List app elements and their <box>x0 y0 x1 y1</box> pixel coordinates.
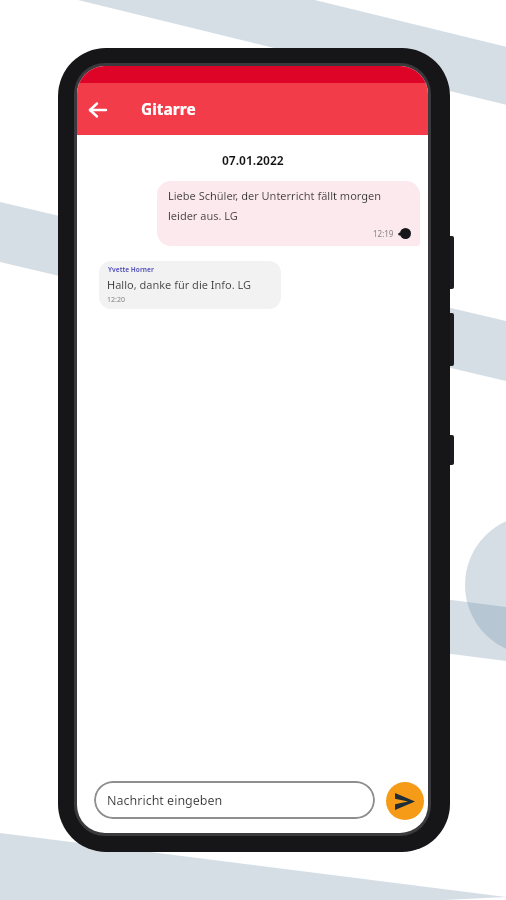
staticText: Yvette Horner <box>108 265 154 274</box>
staticText: 07.01.2022 <box>222 152 284 168</box>
staticText: Hallo, danke für die Info. LG <box>107 277 252 292</box>
staticText: Nachricht eingeben <box>107 792 223 809</box>
staticText: Liebe Schüler, der Unterricht fällt morg… <box>168 188 382 203</box>
staticText: Gitarre <box>141 98 196 119</box>
button[interactable]: Liebe Schüler, der Unterricht fällt morg… <box>157 181 420 246</box>
button[interactable] <box>85 97 111 123</box>
staticText: 12:20 <box>107 295 125 305</box>
button[interactable] <box>386 782 424 820</box>
button[interactable]: Nachricht eingeben <box>94 781 375 819</box>
staticText: leider aus. LG <box>168 208 238 223</box>
button[interactable]: Yvette Horner <box>99 261 281 309</box>
staticText: 12:19 <box>373 228 394 239</box>
